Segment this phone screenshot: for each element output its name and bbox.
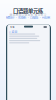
staticText: 智能评分 · 范文解析 · 口语跟读 · 纠音训练 <box>6 16 50 19</box>
staticText: ‹ <box>9 29 10 34</box>
staticText: 口语题单元练 <box>13 7 43 14</box>
staticText: 9:41 <box>10 25 14 29</box>
staticText: 精选高频口语真题 每日练习 <box>9 13 46 17</box>
staticText: 返回 <box>11 30 17 33</box>
